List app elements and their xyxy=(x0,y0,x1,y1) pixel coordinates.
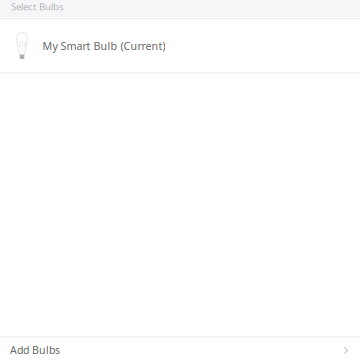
staticText: Add Bulbs xyxy=(10,343,60,357)
button[interactable]: My Smart Bulb (Current) xyxy=(0,20,360,72)
staticText: My Smart Bulb (Current) xyxy=(42,39,165,53)
staticText: Select Bulbs xyxy=(11,0,64,13)
button[interactable]: Add Bulbs xyxy=(0,338,360,360)
